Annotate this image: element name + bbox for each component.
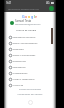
button[interactable]: Configuración [4,70,56,76]
staticText: 4G [46,1,50,5]
staticText: g [31,14,34,19]
button[interactable]: Acerca de [4,82,56,88]
staticText: o [28,14,31,19]
staticText: l [34,14,35,19]
button[interactable]: Información personal [4,34,56,40]
staticText: Datos y personalización [13,42,38,45]
staticText: Información [13,66,26,69]
button[interactable]: Account [49,6,54,11]
staticText: G [22,14,25,19]
staticText: Cuenta de Google [16,28,37,31]
staticText: Samuel Testa [15,19,32,23]
button[interactable]: Datos y personalización [4,40,56,46]
staticText: Pagos y suscripciones [13,54,36,57]
staticText: 9:41 [6,1,12,5]
staticText: Condiciones del Servicio [4,93,56,96]
staticText: Configuración [13,72,28,75]
button[interactable]: Seguridad [4,46,56,52]
button[interactable]: Preferencias [4,58,56,64]
staticText: o [25,14,28,19]
button[interactable]: Información [4,64,56,70]
staticText: Política de Privacidad [4,88,56,91]
staticText: Información personal [13,36,36,39]
staticText: Ayuda y comentarios [13,78,35,81]
staticText: samueltesta09@gmail.com [15,23,41,26]
staticText: Preferencias [13,60,26,63]
staticText: e [35,14,38,19]
staticText: myaccount.google.com/u/0 [8,7,39,10]
button[interactable]: Pagos y suscripciones [4,52,56,58]
staticText: Acerca de [13,84,23,87]
staticText: Seguridad [13,48,24,51]
button[interactable]: Ayuda y comentarios [4,76,56,82]
